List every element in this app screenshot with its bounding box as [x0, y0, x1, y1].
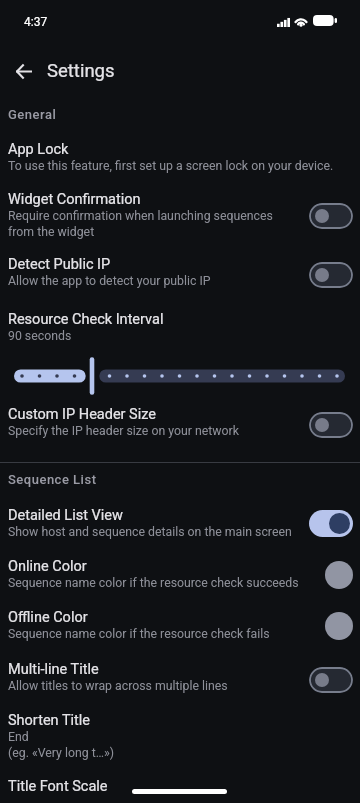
button[interactable]: Toggle [309, 262, 353, 288]
button[interactable]: Pick color [309, 559, 353, 591]
button[interactable]: Detailed List View [0, 507, 360, 539]
staticText: To use this feature, first set up a scre… [8, 159, 334, 173]
button[interactable]: Resource check interval slider [0, 354, 360, 398]
button[interactable]: Custom IP Header Size [0, 406, 360, 438]
button[interactable]: Widget Confirmation [0, 191, 360, 239]
button[interactable]: Multi-line Title [0, 661, 360, 693]
staticText: General [8, 107, 57, 122]
staticText: Sequence List [8, 472, 97, 487]
staticText: Shorten Title [8, 712, 91, 729]
staticText: Resource Check Interval [8, 311, 164, 328]
button[interactable]: Online Color [0, 558, 360, 590]
staticText: Widget Confirmation [8, 191, 141, 208]
button[interactable]: App Lock [0, 141, 360, 173]
staticText: Custom IP Header Size [8, 406, 156, 423]
staticText: Sequence name color if the resource chec… [8, 627, 270, 641]
staticText: Require confirmation when launching sequ… [8, 209, 299, 239]
staticText: Settings [47, 60, 115, 82]
staticText: Title Font Scale [8, 778, 108, 795]
button[interactable]: Shorten Title [0, 712, 360, 760]
staticText: 90 seconds [8, 329, 72, 343]
staticText: App Lock [8, 141, 69, 158]
staticText: Online Color [8, 558, 87, 575]
staticText: End (eg. «Very long t…») [8, 730, 114, 760]
button[interactable]: Offline Color [0, 609, 360, 641]
button[interactable]: Toggle [309, 412, 353, 438]
staticText: Detect Public IP [8, 256, 111, 273]
button[interactable]: Toggle [309, 510, 353, 537]
staticText: 4:37 [24, 15, 48, 29]
staticText: Show host and sequence details on the ma… [8, 525, 292, 539]
staticText: Detailed List View [8, 507, 123, 524]
button[interactable]: Pick color [309, 610, 353, 642]
button[interactable]: Toggle [309, 203, 353, 229]
staticText: Sequence name color if the resource chec… [8, 576, 299, 590]
staticText: Allow the app to detect your public IP [8, 274, 211, 288]
button[interactable]: Detect Public IP [0, 256, 360, 288]
staticText: Specify the IP header size on your netwo… [8, 424, 239, 438]
staticText: Allow titles to wrap across multiple lin… [8, 679, 228, 693]
button[interactable]: Back [4, 51, 44, 91]
button[interactable]: Toggle [309, 667, 353, 693]
staticText: Offline Color [8, 609, 88, 626]
button[interactable]: Title Font Scale [0, 778, 360, 795]
staticText: Multi-line Title [8, 661, 99, 678]
